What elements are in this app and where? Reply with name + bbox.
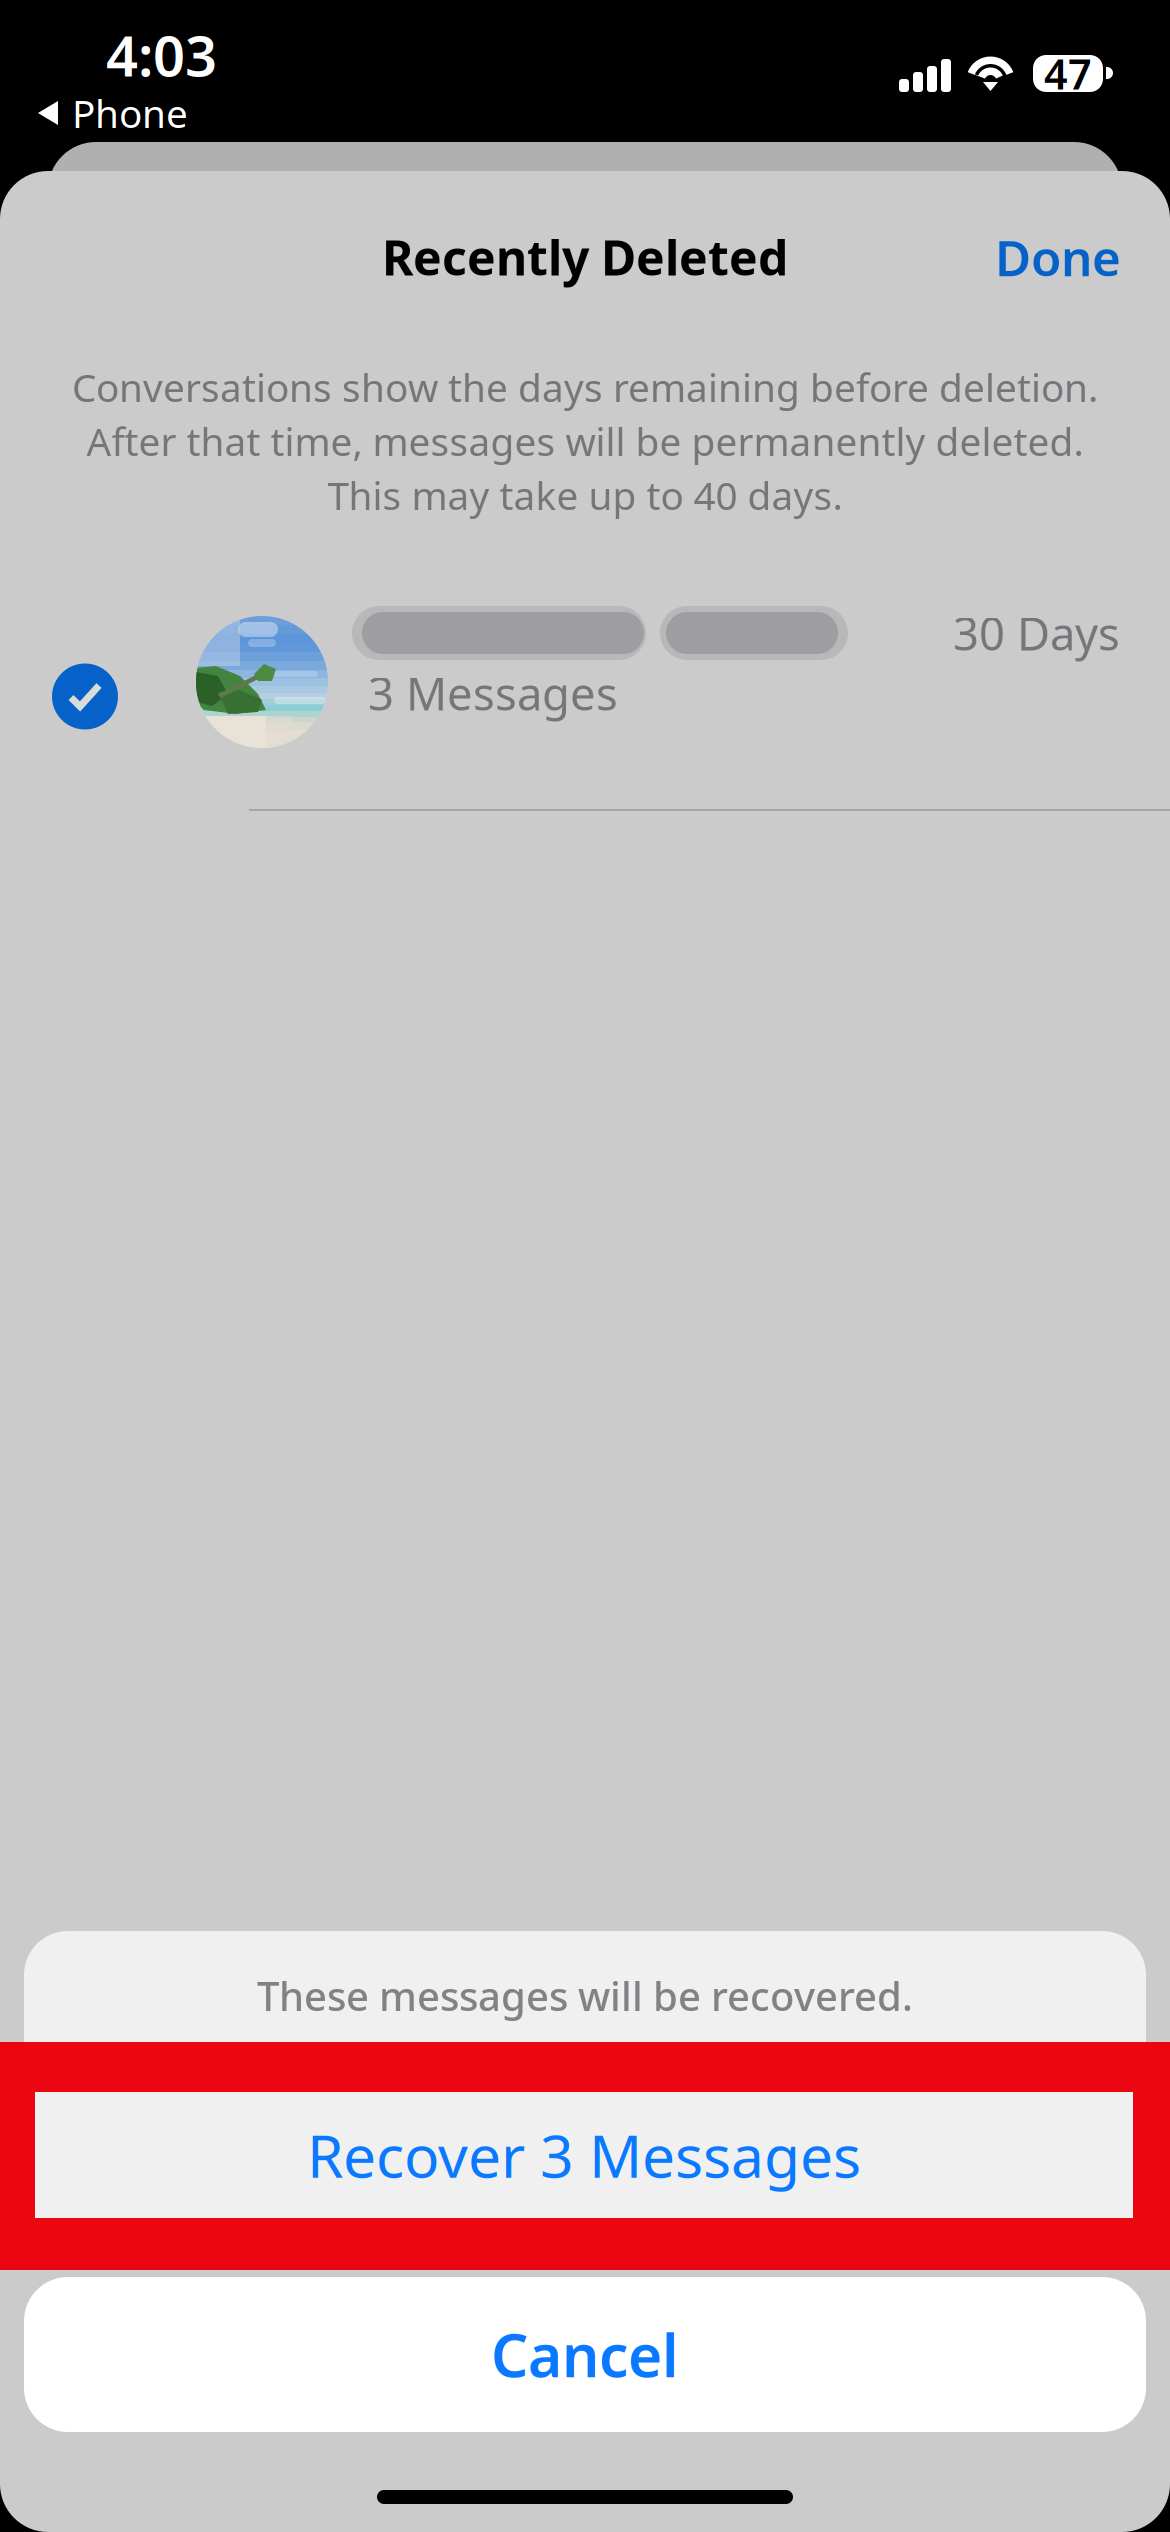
button[interactable]: Recover 3 Messages (35, 2092, 1133, 2218)
button[interactable]: Recover 3 Messages (24, 2093, 1146, 2219)
button[interactable]: 30 Days (0, 584, 1170, 809)
staticText: 30 Days (953, 603, 1120, 663)
staticText: Recover 3 Messages (307, 2116, 861, 2194)
staticText: Cancel (491, 2315, 679, 2393)
staticText: After that time, messages will be perman… (86, 415, 1083, 467)
staticText: These messages will be recovered. (257, 1969, 913, 2022)
staticText: 3 Messages (368, 663, 618, 723)
staticText: Conversations show the days remaining be… (72, 361, 1098, 413)
staticText: Phone (72, 87, 188, 139)
button[interactable]: Back to Phone (0, 93, 204, 133)
staticText: Recently Deleted (382, 225, 788, 289)
staticText: This may take up to 40 days. (327, 469, 842, 521)
button[interactable]: Done (969, 202, 1147, 312)
staticText: Recover 3 Messages (308, 2117, 862, 2195)
button[interactable]: Cancel (24, 2277, 1146, 2432)
staticText: 4:03 (106, 18, 217, 92)
staticText: 47 (1044, 46, 1092, 101)
staticText: Done (995, 224, 1121, 290)
